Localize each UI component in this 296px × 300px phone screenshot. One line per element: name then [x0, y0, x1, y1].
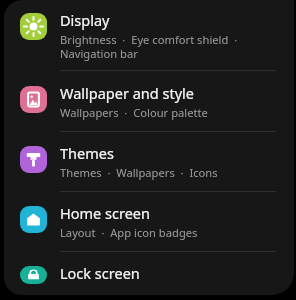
staticText: Themes · Wallpapers · Icons — [60, 165, 218, 180]
staticText: Brightness · Eye comfort shield · Naviga… — [60, 32, 280, 61]
staticText: Display — [60, 10, 110, 30]
staticText: Layout · App icon badges — [60, 225, 198, 240]
staticText: Home screen — [60, 203, 150, 223]
button[interactable]: Lock screen — [4, 252, 294, 295]
button[interactable]: Home screen — [4, 192, 294, 251]
staticText: Wallpapers · Colour palette — [60, 105, 208, 120]
button[interactable]: Themes — [4, 132, 294, 191]
button[interactable]: Wallpaper and style — [4, 71, 294, 131]
staticText: Themes — [60, 143, 114, 163]
button[interactable]: Display — [4, 0, 294, 70]
staticText: Wallpaper and style — [60, 83, 194, 103]
staticText: Lock screen — [60, 263, 140, 283]
